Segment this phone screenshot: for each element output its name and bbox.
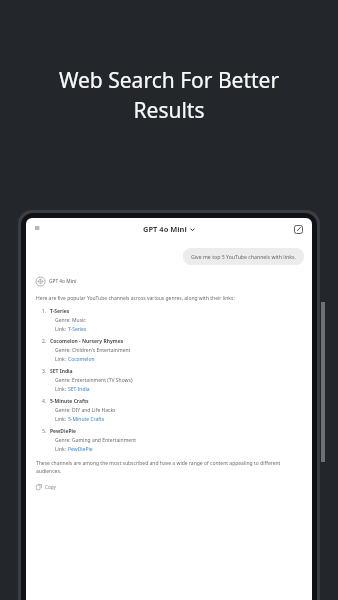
staticText: 5. bbox=[42, 428, 47, 435]
button[interactable]: SET India bbox=[68, 386, 90, 393]
staticText: Cocomelon - Nursery Rhymes bbox=[50, 338, 124, 345]
staticText: Genre: bbox=[55, 437, 72, 444]
staticText: 5-Minute Crafts bbox=[50, 398, 89, 405]
staticText: T-Series bbox=[68, 326, 87, 333]
staticText: Here are five popular YouTube channels a… bbox=[36, 295, 235, 302]
staticText: 4. bbox=[42, 398, 47, 405]
staticText: 2. bbox=[42, 338, 47, 345]
staticText: SET India bbox=[68, 386, 90, 393]
button[interactable]: Give me top 5 YouTube channels with link… bbox=[183, 248, 304, 265]
staticText: Link: bbox=[55, 416, 68, 423]
staticText: 3. bbox=[42, 368, 47, 375]
staticText: Web Search For Better Results bbox=[24, 66, 314, 124]
button[interactable]: 5-Minute Crafts bbox=[68, 416, 105, 423]
staticText: Link: bbox=[55, 326, 68, 333]
staticText: Copy bbox=[45, 484, 56, 490]
button[interactable]: New chat bbox=[291, 222, 305, 236]
staticText: GPT 4o Mini bbox=[143, 224, 187, 234]
staticText: SET India bbox=[50, 368, 73, 375]
staticText: Link: bbox=[55, 446, 68, 453]
staticText: PewDiePie bbox=[68, 446, 93, 453]
staticText: Genre: bbox=[55, 347, 72, 354]
staticText: Gaming and Entertainment bbox=[72, 437, 137, 444]
staticText: T-Series bbox=[50, 308, 70, 315]
button[interactable]: Copy bbox=[36, 484, 56, 490]
staticText: Give me top 5 YouTube channels with link… bbox=[191, 253, 296, 260]
staticText: 5-Minute Crafts bbox=[68, 416, 105, 423]
staticText: PewDiePie bbox=[50, 428, 76, 435]
staticText: Genre: bbox=[55, 377, 72, 384]
staticText: DIY and Life Hacks bbox=[72, 407, 116, 414]
button[interactable]: GPT 4o Mini bbox=[143, 224, 195, 234]
staticText: Entertainment (TV Shows) bbox=[72, 377, 133, 384]
staticText: Children's Entertainment bbox=[72, 347, 131, 354]
staticText: Cocomelon bbox=[68, 356, 95, 363]
staticText: Music bbox=[72, 317, 86, 324]
button[interactable]: Open sidebar bbox=[32, 222, 46, 236]
button[interactable]: Cocomelon bbox=[68, 356, 95, 363]
staticText: These channels are among the most subscr… bbox=[36, 460, 302, 475]
staticText: Link: bbox=[55, 386, 68, 393]
staticText: Genre: bbox=[55, 317, 72, 324]
staticText: Link: bbox=[55, 356, 68, 363]
staticText: Genre: bbox=[55, 407, 72, 414]
staticText: 1. bbox=[42, 308, 47, 315]
button[interactable]: T-Series bbox=[68, 326, 87, 333]
button[interactable]: PewDiePie bbox=[68, 446, 93, 453]
staticText: GPT 4o Mini bbox=[49, 278, 77, 285]
